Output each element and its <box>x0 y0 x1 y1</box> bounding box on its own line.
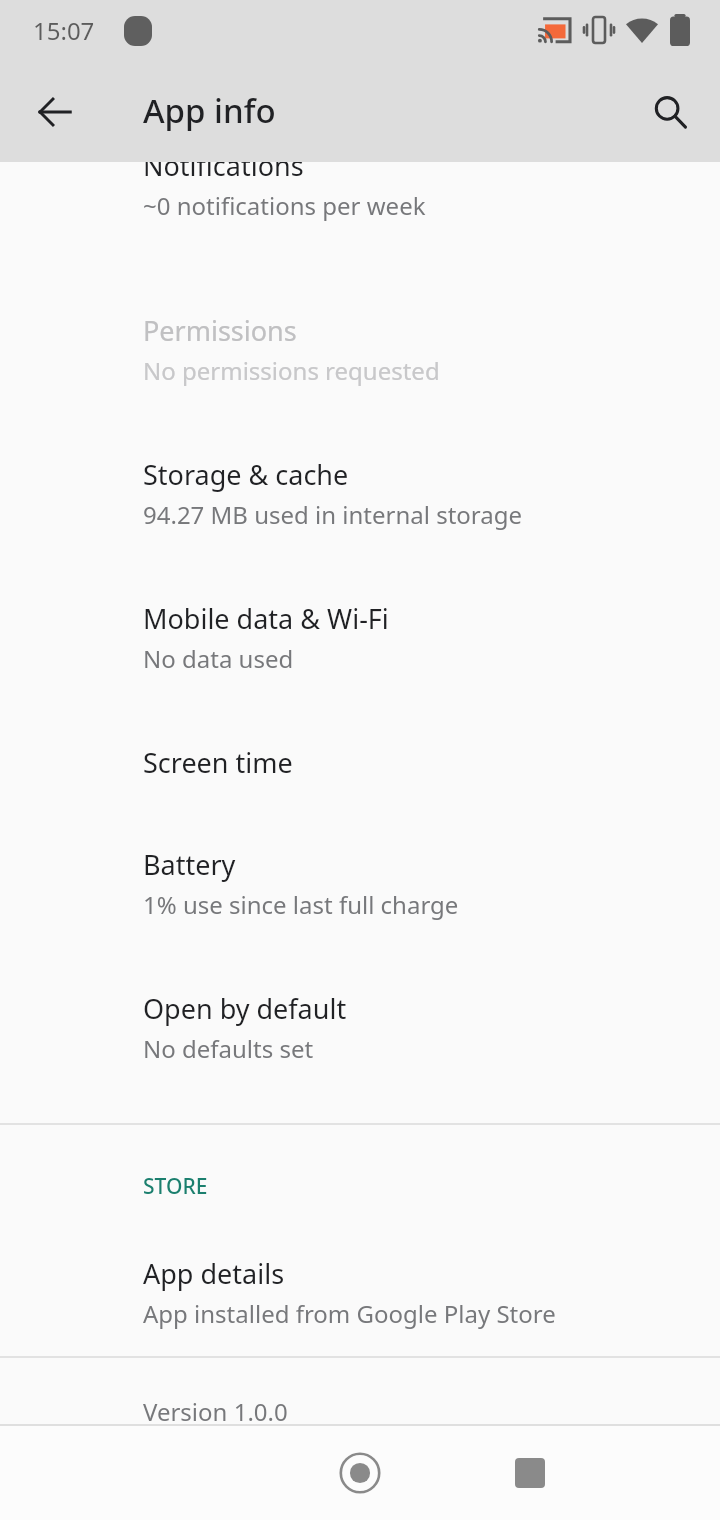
button[interactable]: Storage & cache <box>0 450 720 550</box>
button[interactable]: Search <box>630 72 710 152</box>
staticText: 15:07 <box>33 14 95 47</box>
button[interactable]: Recent apps <box>490 1426 570 1520</box>
staticText: 94.27 MB used in internal storage <box>143 498 523 531</box>
staticText: Mobile data & Wi-Fi <box>143 600 389 637</box>
staticText: Notifications <box>143 147 304 184</box>
button[interactable]: Battery <box>0 840 720 940</box>
button[interactable]: Notifications <box>0 162 720 258</box>
staticText: No data used <box>143 642 294 675</box>
staticText: Storage & cache <box>143 456 349 493</box>
staticText: Screen time <box>143 744 293 781</box>
staticText: No permissions requested <box>143 354 440 387</box>
staticText: App details <box>143 1255 285 1292</box>
staticText: Permissions <box>143 312 297 349</box>
staticText: Version 1.0.0 <box>143 1395 288 1428</box>
button[interactable]: Screen time <box>0 738 720 796</box>
button[interactable]: Mobile data & Wi-Fi <box>0 594 720 694</box>
staticText: Open by default <box>143 990 347 1027</box>
button[interactable]: Permissions <box>0 306 720 406</box>
staticText: ~0 notifications per week <box>143 189 426 222</box>
button[interactable]: Home <box>320 1426 400 1520</box>
staticText: STORE <box>143 1172 208 1201</box>
staticText: App installed from Google Play Store <box>143 1297 556 1330</box>
staticText: No defaults set <box>143 1032 314 1065</box>
staticText: 1% use since last full charge <box>143 888 459 921</box>
staticText: Battery <box>143 846 236 883</box>
button[interactable]: App details <box>0 1255 720 1347</box>
button[interactable]: Open by default <box>0 984 720 1084</box>
staticText: App info <box>143 88 276 133</box>
button[interactable]: Back <box>15 72 95 152</box>
